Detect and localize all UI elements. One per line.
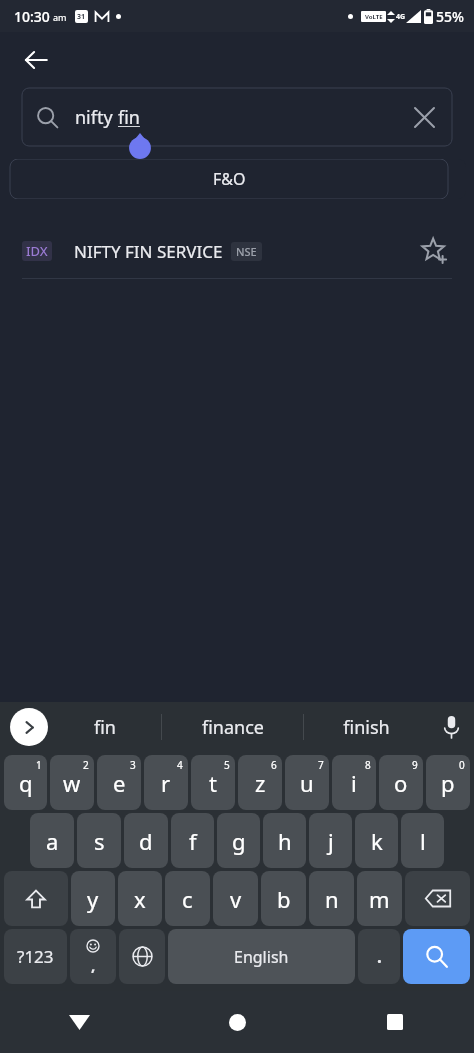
button[interactable]: u [285, 755, 329, 810]
button[interactable]: d [124, 813, 168, 868]
staticText: q [19, 768, 33, 798]
staticText: m [369, 884, 390, 914]
staticText: English [234, 946, 289, 968]
staticText: NIFTY FIN SERVICE [74, 240, 223, 263]
staticText: NSE [236, 244, 257, 259]
staticText: am [53, 11, 67, 23]
staticText: ?123 [17, 945, 54, 968]
staticText: i [351, 768, 357, 798]
button[interactable]: a [30, 813, 74, 868]
button[interactable]: e [97, 755, 141, 810]
staticText: 4G [396, 12, 406, 22]
button[interactable]: Voice input [428, 702, 474, 752]
staticText: IDX [26, 242, 48, 260]
button[interactable]: . [358, 929, 400, 984]
staticText: 6 [271, 758, 277, 772]
button[interactable]: Search [403, 929, 470, 984]
button[interactable]: j [309, 813, 352, 868]
button[interactable]: finish [304, 702, 428, 752]
staticText: v [230, 884, 242, 914]
button[interactable]: q [4, 755, 47, 810]
button[interactable]: c [165, 871, 210, 926]
staticText: s [94, 826, 105, 856]
staticText: k [371, 826, 383, 856]
button[interactable]: IDX [0, 224, 474, 278]
button[interactable]: l [401, 813, 444, 868]
button[interactable]: Back [14, 38, 58, 82]
button[interactable]: Close keyboard [0, 991, 158, 1053]
button[interactable]: m [357, 871, 402, 926]
staticText: 10:30 [14, 7, 50, 26]
button[interactable]: f [171, 813, 214, 868]
button[interactable]: Recent apps [316, 991, 474, 1053]
button[interactable]: More suggestions [10, 708, 48, 746]
staticText: c [182, 884, 193, 914]
button[interactable]: fin [48, 702, 161, 752]
button[interactable]: Emoji [70, 929, 116, 984]
button[interactable]: o [379, 755, 423, 810]
button[interactable]: ?123 [4, 929, 67, 984]
staticText: 5 [224, 758, 230, 772]
staticText: 4 [177, 758, 183, 772]
staticText: b [277, 884, 291, 914]
button[interactable]: r [144, 755, 188, 810]
button[interactable]: finance [162, 702, 303, 752]
staticText: u [300, 768, 314, 798]
button[interactable]: i [332, 755, 376, 810]
staticText: j [328, 826, 334, 856]
button[interactable]: w [50, 755, 94, 810]
button[interactable]: p [426, 755, 470, 810]
staticText: fin [94, 715, 116, 740]
staticText: 31 [77, 12, 86, 22]
staticText: r [161, 768, 171, 798]
staticText: 55% [436, 7, 464, 26]
staticText: z [255, 768, 266, 798]
staticText: 7 [318, 758, 324, 772]
staticText: a [46, 826, 59, 856]
staticText: VoLTE [365, 13, 383, 21]
button[interactable]: Backspace [405, 871, 470, 926]
staticText: g [232, 826, 246, 856]
staticText: y [87, 884, 99, 914]
staticText: w [63, 768, 81, 798]
staticText: o [394, 768, 408, 798]
button[interactable]: b [261, 871, 306, 926]
button[interactable]: F&O [0, 159, 466, 199]
button[interactable]: nifty [22, 88, 452, 146]
button[interactable]: z [238, 755, 282, 810]
button[interactable]: Home [158, 991, 316, 1053]
staticText: n [325, 884, 339, 914]
staticText: x [134, 884, 146, 914]
button[interactable]: Shift [4, 871, 68, 926]
staticText: e [113, 768, 126, 798]
button[interactable]: Clear search [410, 103, 438, 131]
staticText: l [420, 826, 426, 856]
staticText: 1 [36, 758, 42, 772]
staticText: 0 [459, 758, 465, 772]
button[interactable]: k [355, 813, 398, 868]
staticText: f [189, 826, 197, 856]
button[interactable]: s [77, 813, 121, 868]
staticText: 3 [130, 758, 136, 772]
staticText: fin [118, 105, 140, 130]
button[interactable]: y [71, 871, 115, 926]
staticText: F&O [213, 168, 246, 190]
button[interactable]: n [309, 871, 354, 926]
button[interactable]: Change language [119, 929, 165, 984]
button[interactable]: v [213, 871, 258, 926]
button[interactable]: x [118, 871, 162, 926]
button[interactable]: English [168, 929, 355, 984]
staticText: 9 [412, 758, 418, 772]
button[interactable]: g [217, 813, 260, 868]
staticText: 8 [365, 758, 371, 772]
staticText: finish [343, 715, 390, 740]
staticText: nifty [75, 105, 118, 130]
staticText: h [278, 826, 292, 856]
button[interactable]: t [191, 755, 235, 810]
button[interactable]: Add to watchlist [416, 233, 452, 269]
button[interactable]: h [263, 813, 306, 868]
staticText: d [139, 826, 153, 856]
staticText: t [209, 768, 217, 798]
staticText: . [377, 945, 382, 968]
staticText: p [441, 768, 455, 798]
